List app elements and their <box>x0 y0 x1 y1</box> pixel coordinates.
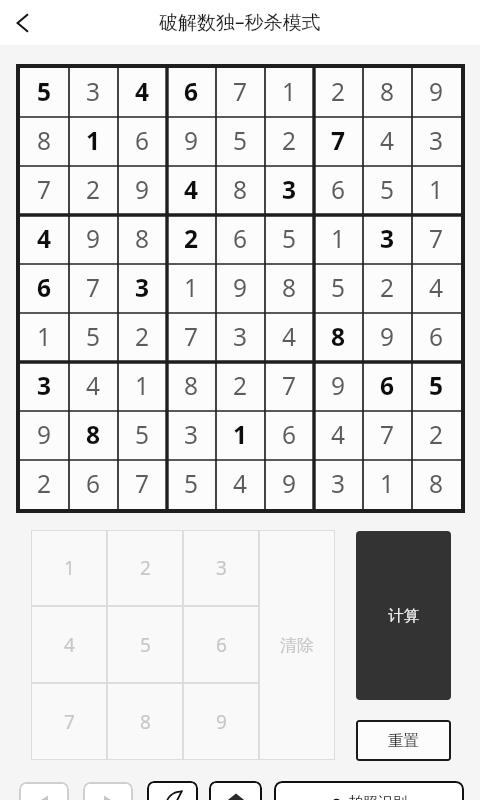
button[interactable]: 8 <box>20 117 69 166</box>
button[interactable]: 7 <box>118 460 167 509</box>
button[interactable]: 清除 <box>259 530 335 760</box>
button[interactable]: 4 <box>20 215 69 264</box>
button[interactable]: 8 <box>265 264 314 313</box>
button[interactable]: 8 <box>314 313 363 362</box>
button[interactable]: 1 <box>31 530 107 606</box>
button[interactable]: 2 <box>69 166 118 215</box>
button[interactable]: 9 <box>167 117 216 166</box>
button[interactable]: 1 <box>216 411 265 460</box>
button[interactable]: 2 <box>363 264 412 313</box>
button[interactable]: 9 <box>363 313 412 362</box>
button[interactable]: 6 <box>363 362 412 411</box>
button[interactable]: 7 <box>167 313 216 362</box>
button[interactable]: 8 <box>216 166 265 215</box>
button[interactable]: 3 <box>314 460 363 509</box>
button[interactable]: 5 <box>216 117 265 166</box>
button[interactable]: 1 <box>412 166 461 215</box>
button[interactable]: 7 <box>412 215 461 264</box>
button[interactable]: 7 <box>216 68 265 117</box>
button[interactable]: 4 <box>167 166 216 215</box>
button[interactable]: Back <box>2 0 42 45</box>
button[interactable]: 1 <box>20 313 69 362</box>
button[interactable]: 5 <box>107 606 183 683</box>
button[interactable]: 重置 <box>356 720 451 761</box>
button[interactable]: 8 <box>363 68 412 117</box>
button[interactable]: 2 <box>20 460 69 509</box>
button[interactable]: 1 <box>314 215 363 264</box>
button[interactable]: 8 <box>167 362 216 411</box>
button[interactable]: 9 <box>20 411 69 460</box>
button[interactable]: Forward <box>83 782 133 800</box>
button[interactable]: 7 <box>314 117 363 166</box>
button[interactable]: 7 <box>265 362 314 411</box>
button[interactable]: 5 <box>20 68 69 117</box>
button[interactable]: 1 <box>363 460 412 509</box>
button[interactable]: Back <box>19 782 69 800</box>
button[interactable]: 5 <box>412 362 461 411</box>
button[interactable]: 7 <box>69 264 118 313</box>
staticText: 8 <box>135 222 150 255</box>
button[interactable]: 6 <box>314 166 363 215</box>
button[interactable]: 6 <box>216 215 265 264</box>
button[interactable]: 3 <box>20 362 69 411</box>
button[interactable]: 5 <box>69 313 118 362</box>
button[interactable]: 7 <box>363 411 412 460</box>
button[interactable]: 计算 <box>356 531 451 700</box>
button[interactable]: 3 <box>412 117 461 166</box>
button[interactable]: 1 <box>265 68 314 117</box>
button[interactable]: 5 <box>363 166 412 215</box>
button[interactable]: 3 <box>183 530 259 606</box>
button[interactable]: 4 <box>69 362 118 411</box>
button[interactable]: 拍照识别 <box>274 781 464 800</box>
button[interactable]: 8 <box>412 460 461 509</box>
button[interactable]: 2 <box>412 411 461 460</box>
button[interactable]: 1 <box>69 117 118 166</box>
button[interactable]: 5 <box>314 264 363 313</box>
button[interactable]: 9 <box>118 166 167 215</box>
button[interactable]: 3 <box>216 313 265 362</box>
button[interactable]: 8 <box>69 411 118 460</box>
button[interactable]: 6 <box>20 264 69 313</box>
button[interactable]: 3 <box>69 68 118 117</box>
button[interactable]: 3 <box>167 411 216 460</box>
button[interactable]: 4 <box>412 264 461 313</box>
button[interactable]: 3 <box>118 264 167 313</box>
button[interactable]: 4 <box>216 460 265 509</box>
button[interactable]: 2 <box>167 215 216 264</box>
button[interactable]: 8 <box>118 215 167 264</box>
button[interactable]: 5 <box>118 411 167 460</box>
button[interactable]: 6 <box>265 411 314 460</box>
button[interactable]: 4 <box>118 68 167 117</box>
button[interactable]: 5 <box>265 215 314 264</box>
button[interactable]: 9 <box>412 68 461 117</box>
button[interactable]: 9 <box>216 264 265 313</box>
button[interactable]: 2 <box>118 313 167 362</box>
button[interactable]: 3 <box>363 215 412 264</box>
button[interactable]: 6 <box>118 117 167 166</box>
button[interactable]: 2 <box>314 68 363 117</box>
button[interactable]: 3 <box>265 166 314 215</box>
button[interactable]: 4 <box>265 313 314 362</box>
button[interactable]: Up <box>209 781 262 800</box>
button[interactable]: 9 <box>314 362 363 411</box>
button[interactable]: 9 <box>265 460 314 509</box>
button[interactable]: 2 <box>265 117 314 166</box>
button[interactable]: Draw <box>147 781 198 800</box>
button[interactable]: 7 <box>20 166 69 215</box>
button[interactable]: 9 <box>183 683 259 760</box>
button[interactable]: 4 <box>314 411 363 460</box>
button[interactable]: 6 <box>69 460 118 509</box>
button[interactable]: 4 <box>31 606 107 683</box>
button[interactable]: 1 <box>167 264 216 313</box>
button[interactable]: 6 <box>183 606 259 683</box>
button[interactable]: 6 <box>167 68 216 117</box>
button[interactable]: 9 <box>69 215 118 264</box>
button[interactable]: 7 <box>31 683 107 760</box>
button[interactable]: 4 <box>363 117 412 166</box>
button[interactable]: 1 <box>118 362 167 411</box>
button[interactable]: 2 <box>107 530 183 606</box>
button[interactable]: 6 <box>412 313 461 362</box>
button[interactable]: 8 <box>107 683 183 760</box>
button[interactable]: 2 <box>216 362 265 411</box>
button[interactable]: 5 <box>167 460 216 509</box>
